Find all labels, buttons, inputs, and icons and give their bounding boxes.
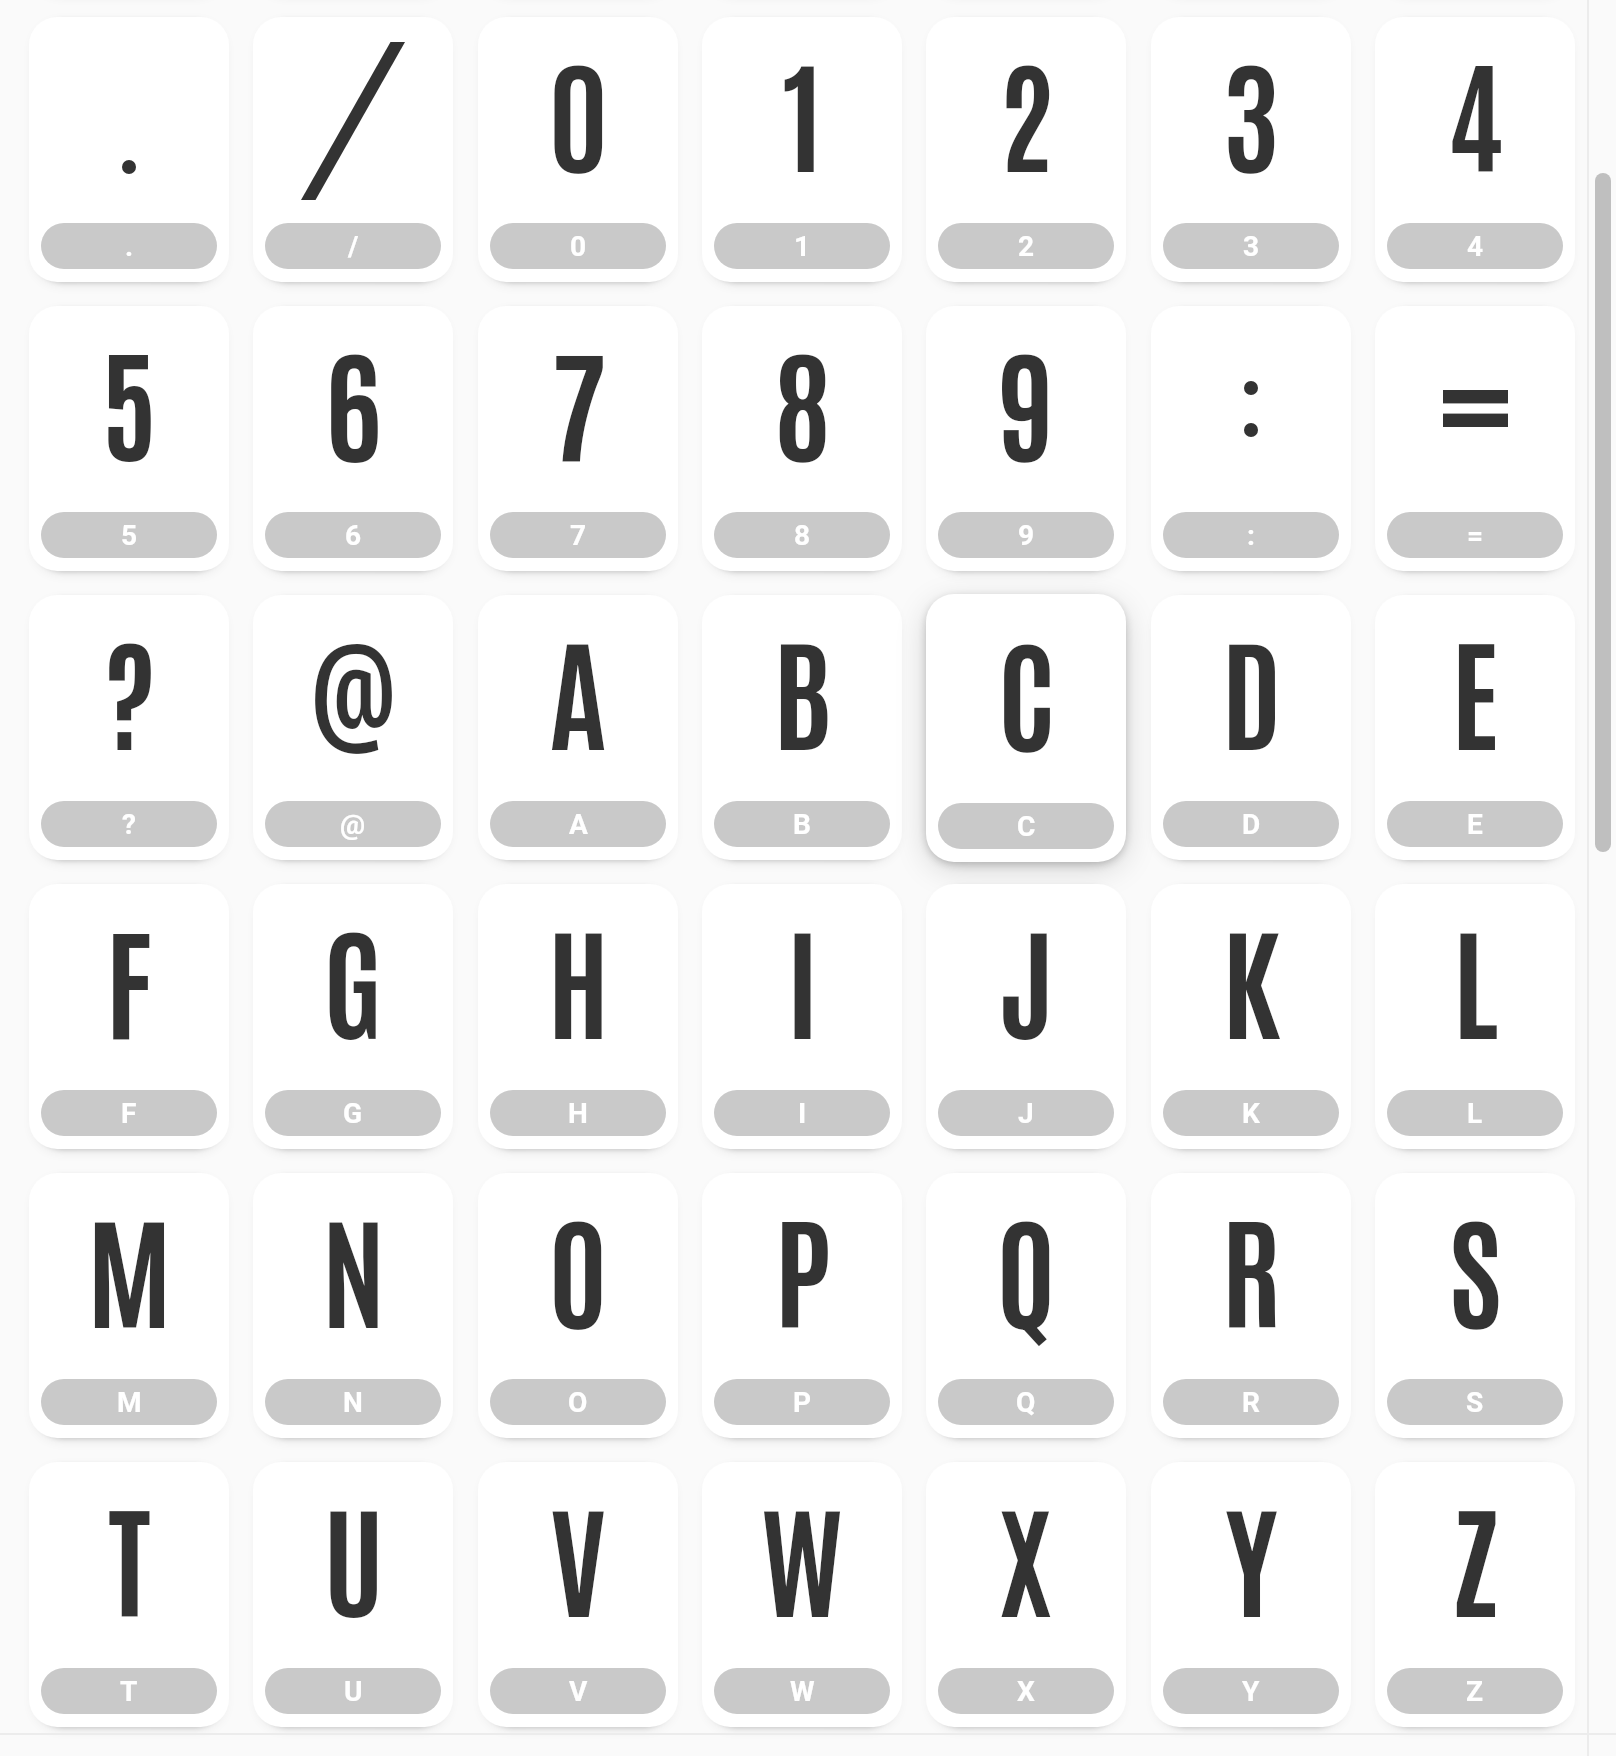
staticText: 1	[794, 230, 811, 263]
staticText: 2	[998, 30, 1055, 189]
staticText: M	[117, 1386, 142, 1419]
staticText: U	[344, 1675, 363, 1708]
staticText: U	[323, 1475, 384, 1634]
button[interactable]: Insert 1	[702, 17, 902, 282]
staticText: T	[108, 1475, 151, 1634]
staticText: 7	[570, 519, 587, 552]
staticText: A	[550, 608, 606, 767]
button[interactable]: Insert T	[29, 1462, 229, 1727]
button[interactable]: Insert H	[478, 884, 678, 1149]
button[interactable]: Insert .	[29, 17, 229, 282]
button[interactable]: Insert D	[1151, 595, 1351, 860]
staticText: W	[761, 1475, 843, 1634]
staticText: .	[125, 230, 134, 263]
staticText: W	[790, 1675, 815, 1708]
staticText: I	[786, 897, 819, 1056]
staticText: C	[997, 609, 1056, 768]
button[interactable]: Insert P	[702, 1173, 902, 1438]
staticText: 4	[1447, 30, 1504, 189]
staticText: B	[793, 808, 811, 841]
button[interactable]: Insert 3	[1151, 17, 1351, 282]
button[interactable]: Insert M	[29, 1173, 229, 1438]
staticText: R	[1221, 1186, 1281, 1345]
button[interactable]: Insert 4	[1375, 17, 1575, 282]
button[interactable]: Insert I	[702, 884, 902, 1149]
button[interactable]: Insert E	[1375, 595, 1575, 860]
button[interactable]: Insert F	[29, 884, 229, 1149]
staticText: 8	[774, 319, 831, 478]
button[interactable]: Insert A	[478, 595, 678, 860]
staticText: Q	[996, 1186, 1056, 1345]
staticText: G	[343, 1097, 363, 1130]
staticText: 9	[1018, 519, 1035, 552]
button[interactable]: Insert Q	[926, 1173, 1126, 1438]
button[interactable]: Insert 0	[478, 17, 678, 282]
staticText: V	[569, 1675, 588, 1708]
staticText: R	[1242, 1386, 1260, 1419]
button[interactable]: Insert 5	[29, 306, 229, 571]
button[interactable]: Insert Y	[1151, 1462, 1351, 1727]
button[interactable]: Insert 7	[478, 306, 678, 571]
staticText: 4	[1467, 230, 1484, 263]
button[interactable]: Insert V	[478, 1462, 678, 1727]
staticText: P	[774, 1186, 831, 1345]
button[interactable]: Insert N	[253, 1173, 453, 1438]
staticText: H	[547, 897, 610, 1056]
button[interactable]: Insert O	[478, 1173, 678, 1438]
button[interactable]: Insert Z	[1375, 1462, 1575, 1727]
staticText: K	[1222, 897, 1281, 1056]
staticText: 2	[1018, 230, 1035, 263]
staticText: Z	[1453, 1475, 1498, 1634]
button[interactable]: Insert /	[253, 17, 453, 282]
staticText: E	[1451, 608, 1499, 767]
button[interactable]: Insert L	[1375, 884, 1575, 1149]
staticText: 5	[121, 519, 138, 552]
staticText: C	[1017, 810, 1036, 843]
staticText: B	[773, 608, 832, 767]
button[interactable]: Insert G	[253, 884, 453, 1149]
button[interactable]: Insert X	[926, 1462, 1126, 1727]
staticText: F	[105, 897, 153, 1056]
button[interactable]: Insert =	[1375, 306, 1575, 571]
button[interactable]: Insert R	[1151, 1173, 1351, 1438]
button[interactable]: Insert 8	[702, 306, 902, 571]
staticText: 6	[345, 519, 362, 552]
staticText: 6	[325, 319, 382, 478]
staticText: 7	[550, 319, 607, 478]
staticText: L	[1467, 1097, 1483, 1130]
staticText: M	[87, 1186, 172, 1345]
staticText: G	[323, 897, 383, 1056]
button[interactable]: Insert U	[253, 1462, 453, 1727]
staticText: @	[340, 808, 366, 841]
staticText: J	[998, 897, 1055, 1056]
staticText: 8	[794, 519, 811, 552]
button[interactable]: Insert W	[702, 1462, 902, 1727]
staticText: E	[1467, 808, 1483, 841]
button[interactable]: Insert 9	[926, 306, 1126, 571]
button[interactable]: Insert S	[1375, 1173, 1575, 1438]
button[interactable]: Insert B	[702, 595, 902, 860]
button[interactable]: Insert C	[926, 594, 1126, 862]
button[interactable]: Insert :	[1151, 306, 1351, 571]
staticText: Q	[1016, 1386, 1036, 1419]
staticText: Z	[1466, 1675, 1484, 1708]
staticText: S	[1449, 1186, 1502, 1345]
button[interactable]: Insert J	[926, 884, 1126, 1149]
staticText: ?	[122, 808, 136, 841]
staticText: 1	[782, 30, 823, 189]
staticText: /	[348, 230, 359, 263]
staticText: X	[1017, 1675, 1035, 1708]
staticText: Y	[1242, 1675, 1260, 1708]
button[interactable]: Insert 2	[926, 17, 1126, 282]
staticText: N	[321, 1186, 386, 1345]
button[interactable]: Insert 6	[253, 306, 453, 571]
staticText: L	[1452, 897, 1498, 1056]
staticText: D	[1242, 808, 1261, 841]
staticText: =	[1467, 519, 1484, 552]
button[interactable]: Insert @	[253, 595, 453, 860]
staticText: H	[568, 1097, 588, 1130]
button[interactable]: Insert K	[1151, 884, 1351, 1149]
staticText: F	[121, 1097, 137, 1130]
button[interactable]: Insert ?	[29, 595, 229, 860]
staticText: I	[798, 1097, 807, 1130]
